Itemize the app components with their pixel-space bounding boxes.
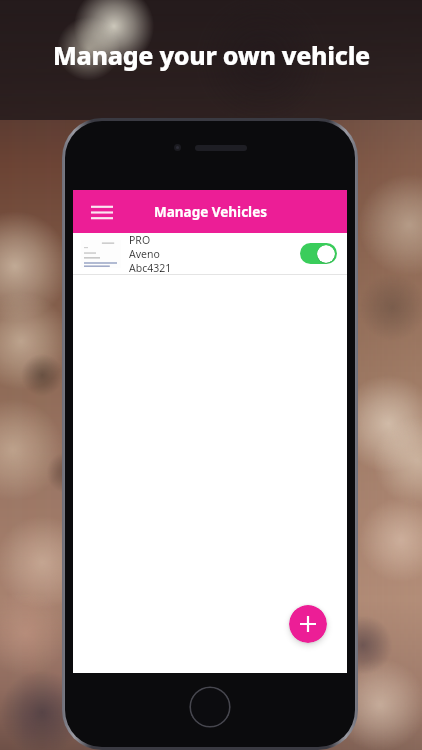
button[interactable]: Vehicle active toggle, on bbox=[300, 243, 337, 264]
staticText: Manage your own vehicle bbox=[53, 38, 370, 72]
staticText: PRO bbox=[129, 233, 151, 247]
staticText: Manage Vehicles bbox=[154, 203, 267, 221]
button[interactable]: Open navigation menu bbox=[85, 195, 119, 229]
staticText: Aveno bbox=[129, 247, 160, 261]
button[interactable]: PRO bbox=[73, 233, 347, 274]
staticText: Abc4321 bbox=[129, 261, 172, 274]
button[interactable]: Add vehicle bbox=[289, 605, 327, 643]
